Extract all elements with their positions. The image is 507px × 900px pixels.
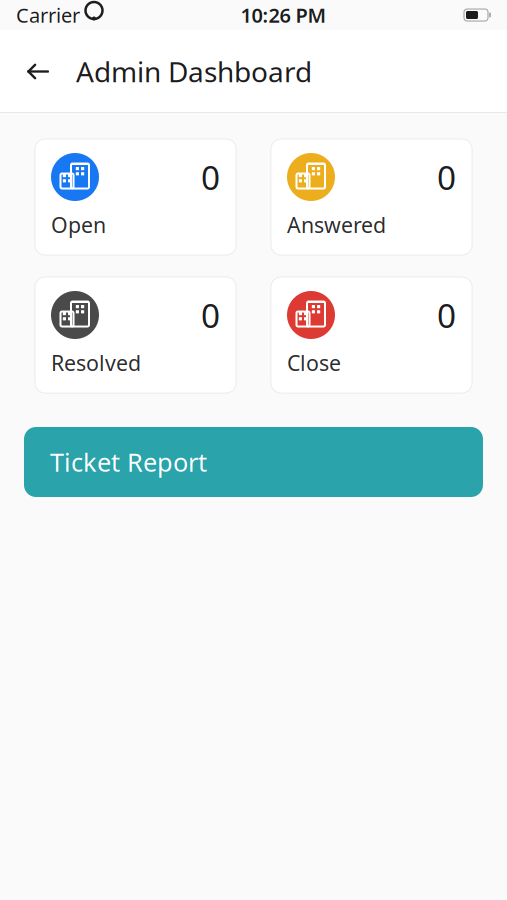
staticText: 0 [201, 293, 220, 337]
button[interactable]: 0 [271, 277, 472, 393]
staticText: 0 [437, 155, 456, 199]
staticText: 0 [201, 155, 220, 199]
button[interactable]: 0 [35, 139, 236, 255]
staticText: Close [287, 349, 341, 377]
staticText: 10:26 PM [240, 2, 326, 28]
button[interactable]: 0 [271, 139, 472, 255]
button[interactable]: Ticket Report [24, 427, 483, 497]
staticText: Carrier [16, 2, 80, 28]
staticText: Resolved [51, 349, 141, 377]
button[interactable]: Back [14, 47, 62, 95]
staticText: Open [51, 211, 106, 239]
staticText: Answered [287, 211, 386, 239]
staticText: 0 [437, 293, 456, 337]
staticText: Ticket Report [50, 445, 207, 479]
button[interactable]: 0 [35, 277, 236, 393]
staticText: Admin Dashboard [76, 53, 312, 90]
